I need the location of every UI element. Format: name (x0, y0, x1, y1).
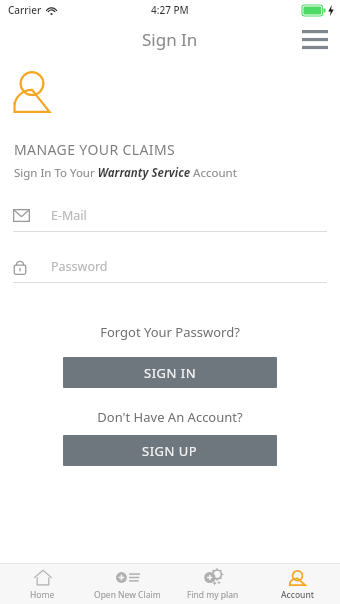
staticText: MANAGE YOUR CLAIMS (14, 140, 176, 159)
staticText: Account (281, 589, 315, 601)
button[interactable]: Home (0, 564, 85, 604)
button[interactable]: Password (13, 258, 327, 283)
staticText: Open New Claim (94, 589, 161, 601)
staticText: 4:27 PM (151, 3, 189, 17)
button[interactable]: E-Mail (13, 207, 327, 232)
button[interactable]: Menu (298, 24, 332, 54)
staticText: Sign In To Your Warranty Service Account (14, 165, 237, 181)
staticText: Carrier (8, 3, 42, 17)
staticText: SIGN UP (142, 442, 198, 460)
button[interactable]: Forgot Your Password? (0, 323, 340, 341)
staticText: E-Mail (51, 207, 87, 224)
button[interactable]: Open New Claim (85, 564, 170, 604)
staticText: Find my plan (187, 589, 239, 601)
staticText: Password (51, 258, 108, 275)
staticText: Don't Have An Account? (97, 408, 243, 426)
staticText: SIGN IN (144, 364, 197, 382)
button[interactable]: SIGN UP (63, 435, 277, 466)
staticText: Home (30, 589, 55, 601)
staticText: Sign In (142, 28, 198, 51)
button[interactable]: Find my plan (170, 564, 255, 604)
staticText: Forgot Your Password? (100, 323, 240, 341)
button[interactable]: SIGN IN (63, 357, 277, 388)
button[interactable]: Account (255, 564, 340, 604)
button[interactable]: Don't Have An Account? (0, 408, 340, 426)
